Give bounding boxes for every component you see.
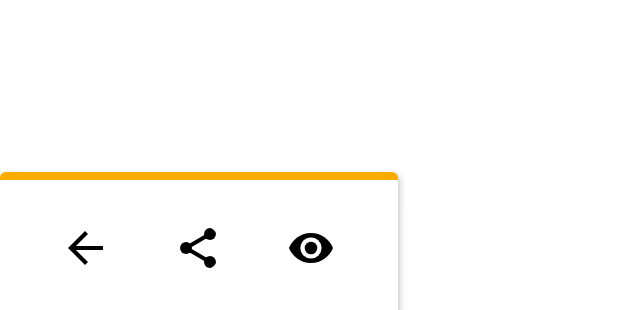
- button[interactable]: Back: [63, 224, 111, 272]
- button[interactable]: Preview: [287, 224, 335, 272]
- button[interactable]: Share: [174, 224, 222, 272]
